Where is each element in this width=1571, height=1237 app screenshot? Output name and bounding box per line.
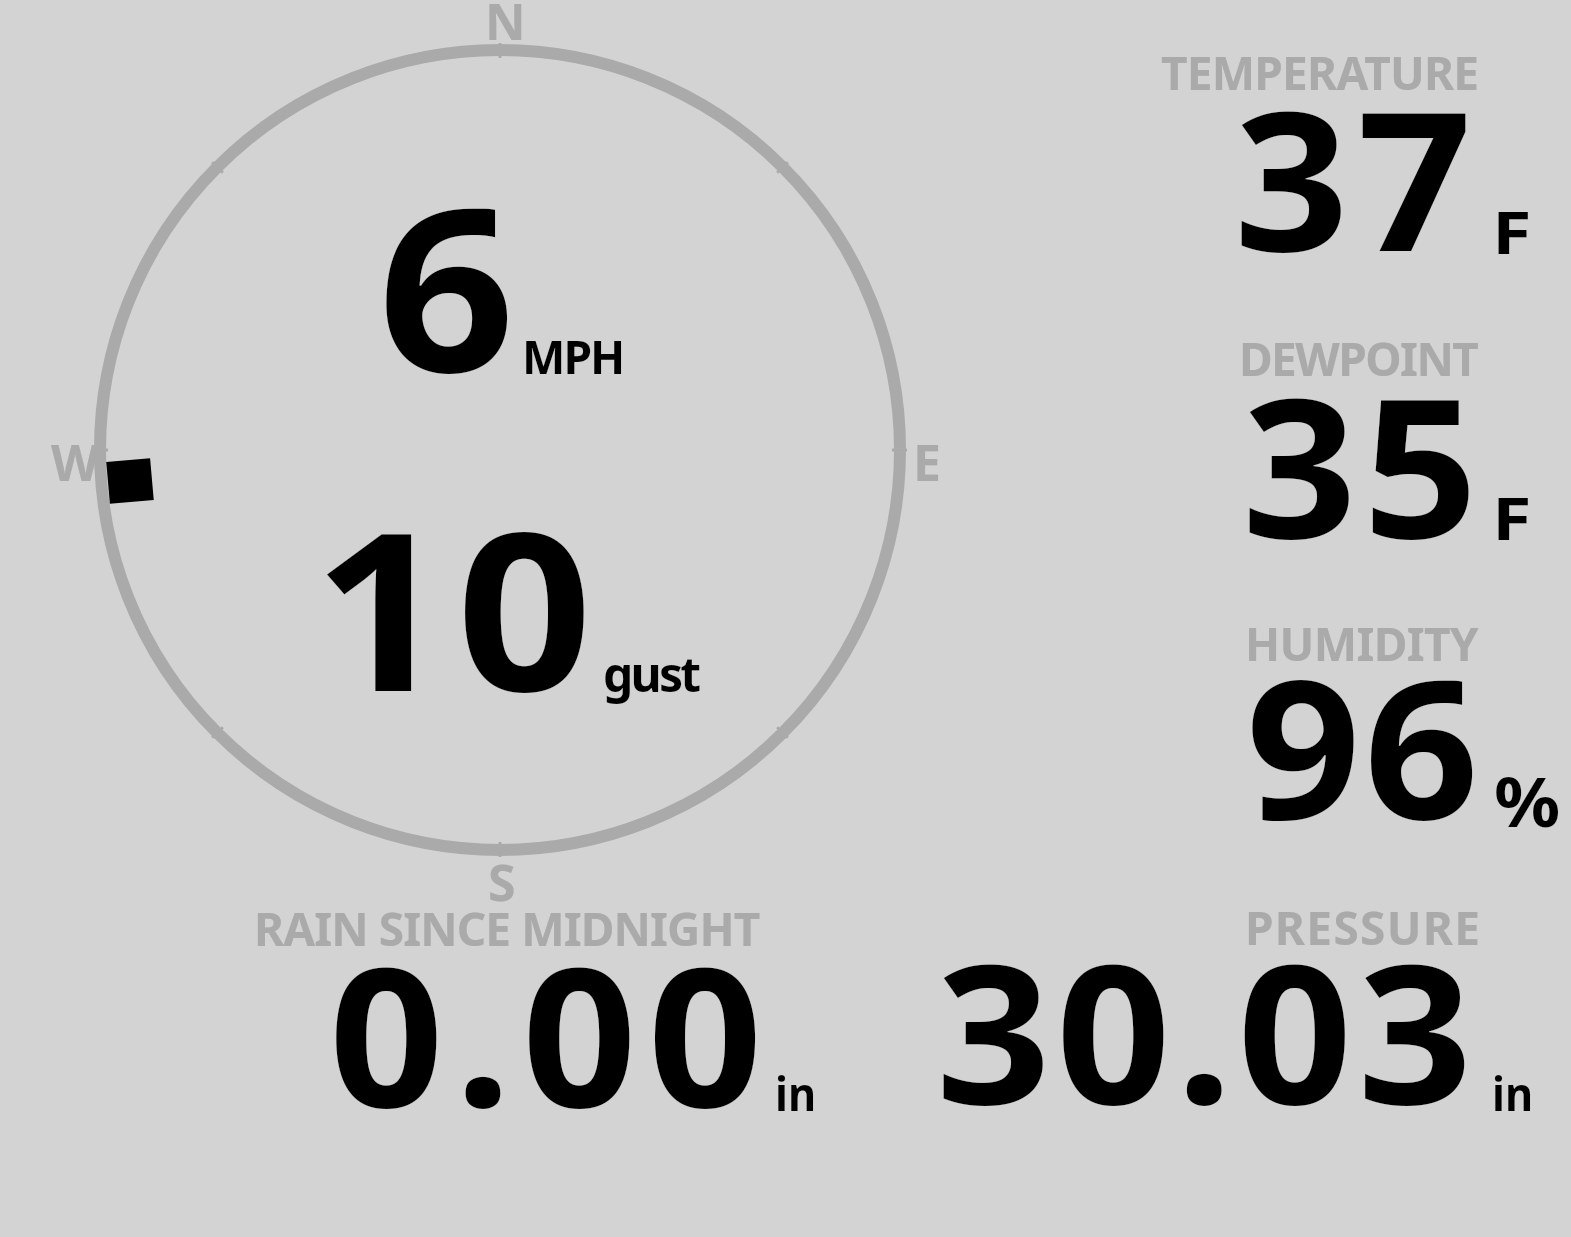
staticText: W	[51, 428, 100, 496]
staticText: 30.03	[936, 899, 1478, 1161]
staticText: in	[775, 1061, 816, 1125]
staticText: TEMPERATURE	[1161, 41, 1479, 104]
staticText: gust	[603, 641, 699, 706]
staticText: F	[1492, 191, 1532, 271]
staticText: 35	[1242, 333, 1484, 595]
staticText: 6	[378, 129, 515, 438]
staticText: 96	[1246, 614, 1482, 876]
button[interactable]: Wind 6 miles per hour, gusting 10	[40, 0, 960, 900]
staticText: 37	[1234, 46, 1481, 308]
staticText: PRESSURE	[1245, 896, 1482, 959]
button[interactable]: Rain since midnight 0.00 inches	[230, 890, 830, 1130]
staticText: 10	[313, 456, 600, 756]
button[interactable]: Humidity 96 percent	[1140, 600, 1560, 850]
button[interactable]: Pressure 30.03 inches	[900, 885, 1550, 1130]
staticText: S	[488, 848, 516, 916]
staticText: DEWPOINT	[1239, 327, 1478, 390]
staticText: 0.00	[329, 902, 774, 1164]
button[interactable]: Temperature 37 degrees Fahrenheit	[1140, 30, 1560, 280]
staticText: E	[913, 428, 941, 496]
staticText: F	[1492, 477, 1532, 557]
staticText: %	[1494, 754, 1561, 847]
staticText: MPH	[522, 325, 624, 388]
button[interactable]: Dewpoint 35 degrees Fahrenheit	[1140, 315, 1560, 565]
staticText: in	[1492, 1061, 1533, 1125]
staticText: RAIN SINCE MIDNIGHT	[254, 897, 760, 960]
staticText: N	[485, 0, 526, 55]
staticText: HUMIDITY	[1245, 612, 1478, 675]
